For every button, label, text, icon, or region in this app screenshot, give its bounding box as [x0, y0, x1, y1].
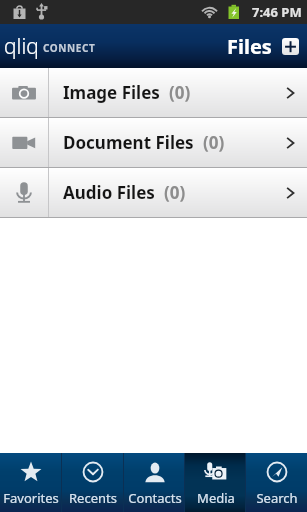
- staticText: Media: [197, 489, 235, 507]
- staticText: (0): [169, 81, 191, 104]
- button[interactable]: Image Files: [0, 68, 307, 117]
- button[interactable]: Contacts: [124, 453, 185, 512]
- staticText: Recents: [69, 489, 117, 507]
- button[interactable]: Favorites: [0, 453, 62, 512]
- staticText: Image Files: [63, 81, 160, 104]
- button[interactable]: Recents: [62, 453, 124, 512]
- staticText: (0): [203, 131, 225, 154]
- staticText: Files: [227, 33, 272, 60]
- button[interactable]: Document Files: [0, 118, 307, 167]
- button[interactable]: Add: [282, 38, 299, 55]
- button[interactable]: Search: [246, 453, 307, 512]
- staticText: CONNECT: [43, 41, 96, 55]
- staticText: Favorites: [3, 489, 59, 507]
- staticText: Contacts: [128, 489, 182, 507]
- staticText: Audio Files: [63, 181, 155, 204]
- staticText: Search: [256, 489, 298, 507]
- button[interactable]: Audio Files: [0, 168, 307, 217]
- button[interactable]: Media: [185, 453, 246, 512]
- staticText: qliq: [4, 32, 39, 61]
- staticText: Document Files: [63, 131, 194, 154]
- staticText: (0): [164, 181, 186, 204]
- staticText: 7:46 PM: [252, 3, 302, 21]
